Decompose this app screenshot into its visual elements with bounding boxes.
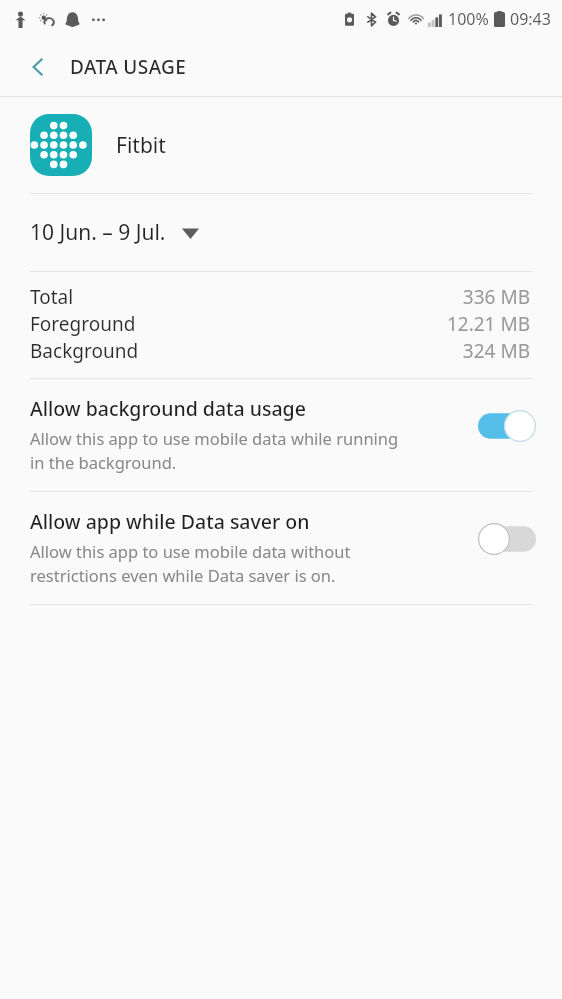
staticText: Allow app while Data saver on [30, 508, 310, 535]
staticText: Total [30, 284, 74, 310]
button[interactable]: Allow background data usage [0, 379, 562, 491]
staticText: restrictions even while Data saver is on… [30, 564, 336, 586]
staticText: in the background. [30, 451, 177, 473]
staticText: 100% [448, 8, 489, 30]
staticText: Foreground [30, 311, 136, 337]
staticText: Allow this app to use mobile data while … [30, 427, 399, 449]
button[interactable]: 10 Jun. – 9 Jul. [0, 194, 562, 271]
button[interactable]: Fitbit [0, 97, 562, 193]
button[interactable]: Toggle on [476, 409, 538, 443]
staticText: 324 MB [462, 338, 530, 364]
button[interactable]: Allow app while Data saver on [0, 492, 562, 604]
staticText: Allow this app to use mobile data withou… [30, 540, 351, 562]
button[interactable]: Navigate up [18, 47, 58, 87]
staticText: 09:43 [510, 8, 551, 30]
staticText: 12.21 MB [446, 311, 530, 337]
staticText: 10 Jun. – 9 Jul. [30, 218, 166, 247]
staticText: Background [30, 338, 139, 364]
staticText: 336 MB [462, 284, 530, 310]
staticText: Fitbit [116, 131, 166, 160]
staticText: DATA USAGE [70, 54, 187, 80]
button[interactable]: Toggle off [476, 522, 538, 556]
staticText: Allow background data usage [30, 395, 306, 422]
